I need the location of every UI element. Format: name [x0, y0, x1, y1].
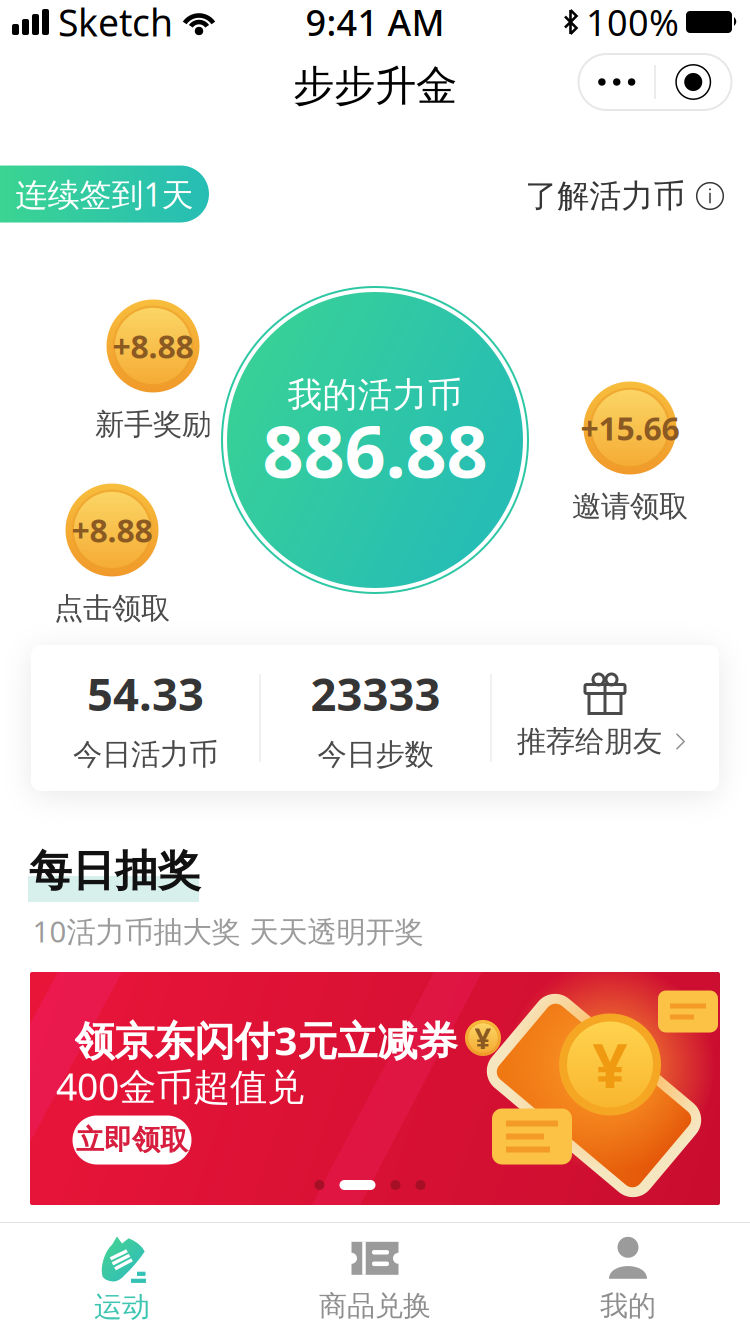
staticText: Sketch — [58, 0, 173, 47]
button[interactable]: +15.66 — [572, 381, 688, 524]
button[interactable]: 我的 — [518, 1229, 738, 1329]
button[interactable]: Close mini program — [656, 54, 731, 110]
staticText: 886.88 — [262, 402, 487, 498]
staticText: 每日抽奖 — [29, 845, 201, 897]
staticText: 9:41 AM — [305, 0, 444, 46]
staticText: 我的 — [600, 1289, 656, 1323]
staticText: 400金币超值兑 — [56, 1061, 304, 1111]
staticText: 今日活力币 — [73, 737, 218, 773]
staticText: 步步升金 — [293, 61, 457, 111]
staticText: 54.33 — [87, 663, 204, 724]
staticText: 10活力币抽大奖 天天透明开奖 — [32, 911, 423, 950]
button[interactable]: +8.88 — [95, 299, 211, 442]
staticText: 23333 — [310, 663, 440, 724]
button[interactable]: ¥ — [30, 972, 720, 1205]
staticText: 连续签到1天 — [15, 173, 193, 215]
staticText: 我的活力币 — [287, 374, 462, 416]
staticText: 点击领取 — [54, 590, 170, 626]
button[interactable]: 运动 — [12, 1229, 232, 1329]
staticText: 100% — [586, 0, 679, 46]
button[interactable]: 推荐给朋友 — [517, 672, 693, 759]
staticText: +8.88 — [71, 509, 152, 551]
staticText: ¥ — [474, 1018, 491, 1057]
staticText: ¥ — [592, 1024, 627, 1105]
staticText: 领京东闪付3元立减券 — [74, 1013, 457, 1066]
button[interactable]: +8.88 — [54, 483, 170, 626]
button[interactable]: 了解活力币 — [525, 176, 727, 216]
staticText: +15.66 — [580, 407, 679, 449]
button[interactable]: 连续签到1天 — [0, 165, 209, 222]
staticText: 推荐给朋友 — [517, 723, 662, 759]
staticText: 商品兑换 — [319, 1289, 431, 1323]
button[interactable]: More — [579, 54, 654, 110]
staticText: 立即领取 — [76, 1123, 188, 1157]
staticText: 了解活力币 — [525, 176, 685, 216]
staticText: 新手奖励 — [95, 406, 211, 442]
staticText: 今日步数 — [317, 737, 433, 773]
staticText: 邀请领取 — [572, 488, 688, 524]
button[interactable]: 商品兑换 — [265, 1229, 485, 1329]
staticText: +8.88 — [112, 325, 193, 367]
staticText: 运动 — [94, 1290, 150, 1324]
